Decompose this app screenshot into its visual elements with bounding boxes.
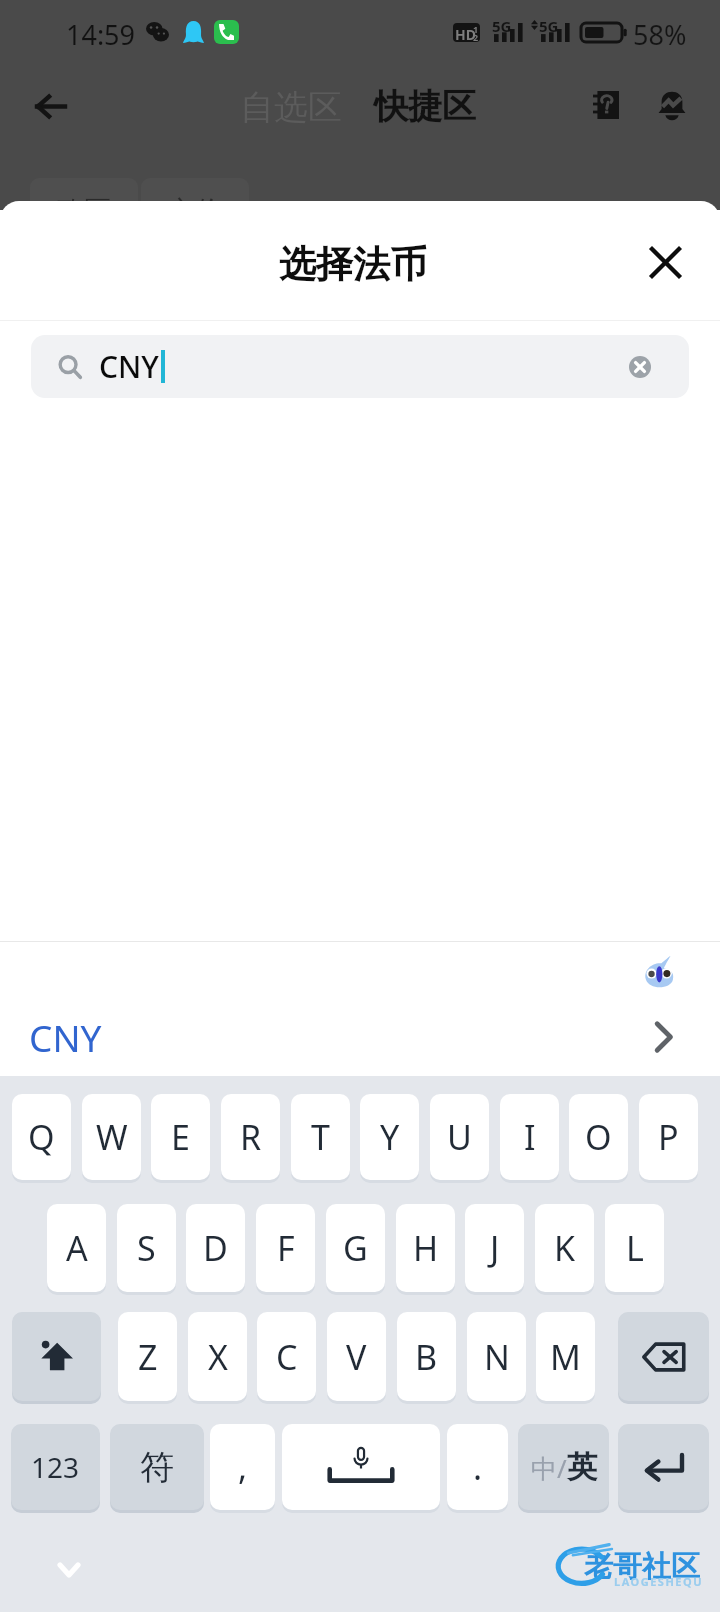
staticText: S (137, 1225, 156, 1271)
staticText: H (413, 1225, 439, 1271)
button[interactable]: M (536, 1312, 595, 1401)
button[interactable]: O (569, 1094, 628, 1180)
staticText: 5G (492, 16, 512, 36)
button[interactable]: Help (586, 81, 626, 129)
staticText: 中/ (531, 1450, 567, 1486)
staticText: 符 (140, 1446, 174, 1489)
staticText: A (66, 1225, 88, 1271)
button[interactable]: Back (22, 78, 78, 134)
staticText: M (550, 1334, 581, 1380)
button[interactable]: Notifications (652, 81, 692, 129)
staticText: CNY (99, 346, 159, 387)
button[interactable]: N (467, 1312, 526, 1401)
staticText: U (447, 1114, 472, 1160)
staticText: Q (28, 1114, 55, 1160)
button[interactable]: 符 (110, 1424, 204, 1510)
staticText: D (203, 1225, 228, 1271)
button[interactable]: R (221, 1094, 280, 1180)
staticText: 1 (473, 23, 479, 35)
staticText: X (208, 1334, 228, 1380)
button[interactable]: G (326, 1204, 385, 1292)
button[interactable]: P (639, 1094, 698, 1180)
button[interactable]: X (188, 1312, 247, 1401)
button[interactable]: V (327, 1312, 386, 1401)
staticText: C (276, 1334, 298, 1380)
button[interactable]: I (500, 1094, 559, 1180)
staticText: B (415, 1334, 438, 1380)
staticText: 老哥社区 (584, 1548, 700, 1585)
button[interactable]: B (397, 1312, 456, 1401)
staticText: 市价 (168, 194, 222, 226)
button[interactable]: Close (636, 233, 694, 291)
button[interactable]: 快捷区 (374, 85, 476, 128)
button[interactable]: K (535, 1204, 594, 1292)
button[interactable]: CNY (0, 1006, 720, 1068)
button[interactable]: S (117, 1204, 176, 1292)
staticText: 5G (539, 16, 559, 36)
staticText: K (554, 1225, 576, 1271)
button[interactable]: Space (282, 1424, 440, 1510)
staticText: Y (380, 1114, 400, 1160)
staticText: 58% (633, 16, 687, 53)
staticText: CNY (29, 1012, 102, 1062)
button[interactable]: 政区 (30, 178, 138, 226)
staticText: 14:59 (66, 16, 136, 53)
staticText: N (484, 1334, 510, 1380)
button[interactable]: E (151, 1094, 210, 1180)
staticText: 英 (567, 1448, 597, 1486)
button[interactable]: D (186, 1204, 245, 1292)
button[interactable]: F (256, 1204, 315, 1292)
staticText: T (311, 1114, 330, 1160)
button[interactable]: 自选区 (240, 86, 342, 129)
staticText: L (626, 1225, 644, 1271)
staticText: R (240, 1114, 262, 1160)
staticText: LAOGESHEQU (614, 1574, 704, 1589)
button[interactable]: , (210, 1424, 275, 1510)
staticText: P (658, 1114, 679, 1160)
button[interactable]: C (257, 1312, 316, 1401)
button[interactable]: L (605, 1204, 664, 1292)
button[interactable]: CNY (31, 335, 689, 398)
button[interactable]: Backspace (618, 1312, 709, 1401)
staticText: Z (138, 1334, 158, 1380)
button[interactable]: 市价 (141, 178, 249, 226)
staticText: E (171, 1114, 190, 1160)
button[interactable]: . (447, 1424, 508, 1510)
button[interactable]: 中/ (518, 1424, 609, 1510)
button[interactable]: H (396, 1204, 455, 1292)
button[interactable]: Clear text (618, 345, 662, 389)
staticText: F (277, 1225, 295, 1271)
staticText: I (524, 1114, 536, 1160)
staticText: 2 (473, 31, 479, 42)
button[interactable]: Q (12, 1094, 71, 1180)
staticText: 选择法币 (279, 241, 427, 288)
button[interactable]: Shift (12, 1312, 101, 1401)
staticText: . (473, 1444, 483, 1490)
button[interactable]: Y (360, 1094, 419, 1180)
button[interactable]: A (47, 1204, 106, 1292)
button[interactable]: Z (118, 1312, 177, 1401)
button[interactable]: U (430, 1094, 489, 1180)
button[interactable]: 123 (11, 1424, 100, 1510)
button[interactable]: J (465, 1204, 524, 1292)
staticText: O (585, 1114, 612, 1160)
staticText: , (238, 1444, 248, 1490)
staticText: G (343, 1225, 368, 1271)
staticText: HD (455, 25, 476, 42)
staticText: W (96, 1114, 128, 1160)
staticText: V (346, 1334, 367, 1380)
button[interactable]: Enter (618, 1424, 709, 1510)
button[interactable]: Hide keyboard (43, 1544, 95, 1596)
button[interactable]: T (291, 1094, 350, 1180)
staticText: J (490, 1225, 500, 1271)
button[interactable]: W (82, 1094, 141, 1180)
staticText: 123 (31, 1448, 80, 1486)
staticText: 政区 (57, 194, 111, 226)
